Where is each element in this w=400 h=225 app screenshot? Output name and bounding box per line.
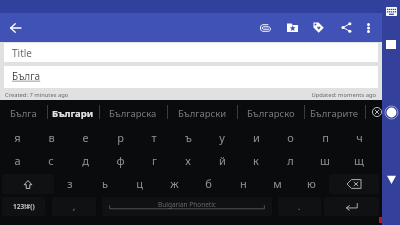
staticText: д — [82, 153, 89, 168]
staticText: м — [273, 176, 282, 191]
staticText: Български — [178, 107, 227, 120]
staticText: у — [219, 130, 225, 145]
staticText: т — [151, 130, 157, 145]
staticText: ш — [320, 153, 330, 168]
button[interactable]: и — [239, 126, 273, 149]
staticText: н — [240, 176, 247, 191]
staticText: е — [82, 130, 89, 145]
button[interactable]: Move to folder — [280, 15, 304, 40]
staticText: Bulgarian Phonetic — [158, 200, 216, 209]
staticText: в — [48, 130, 55, 145]
staticText: г — [152, 153, 157, 168]
staticText: р — [117, 130, 124, 145]
button[interactable]: Navigate up — [3, 13, 27, 42]
button[interactable]: с — [34, 149, 68, 172]
button[interactable]: Home — [382, 103, 400, 122]
staticText: ц — [136, 176, 143, 191]
button[interactable]: Бълга — [0, 100, 47, 127]
button[interactable]: ш — [308, 149, 342, 172]
button[interactable]: Българи — [47, 100, 99, 127]
button[interactable]: Българска — [99, 100, 167, 127]
button[interactable]: Българите — [304, 100, 365, 127]
button[interactable]: х — [171, 149, 205, 172]
button[interactable]: Share — [334, 15, 358, 40]
button[interactable]: п — [308, 126, 342, 149]
staticText: Бълга — [10, 107, 37, 120]
button[interactable]: у — [205, 126, 239, 149]
staticText: Updated: moments ago — [276, 91, 376, 99]
button[interactable]: л — [273, 149, 307, 172]
staticText: б — [205, 176, 212, 191]
button[interactable]: Space — [102, 197, 272, 216]
button[interactable]: ж — [157, 172, 191, 195]
button[interactable]: е — [68, 126, 102, 149]
staticText: , — [73, 201, 76, 212]
button[interactable]: Switch keyboard — [382, 3, 400, 19]
staticText: ю — [307, 176, 316, 191]
button[interactable]: Shift — [2, 174, 54, 194]
staticText: Title — [12, 46, 32, 60]
button[interactable]: Symbols — [2, 197, 45, 216]
button[interactable]: я — [0, 126, 34, 149]
button[interactable]: р — [103, 126, 137, 149]
staticText: п — [322, 130, 329, 145]
button[interactable]: к — [239, 149, 273, 172]
staticText: л — [287, 153, 294, 168]
button[interactable]: Labels — [306, 15, 330, 40]
staticText: 123!#() — [13, 202, 35, 211]
button[interactable]: н — [226, 172, 260, 195]
button[interactable]: в — [34, 126, 68, 149]
staticText: о — [287, 130, 294, 145]
staticText: з — [67, 176, 73, 191]
staticText: я — [14, 130, 21, 145]
staticText: х — [185, 153, 191, 168]
button[interactable]: Title — [4, 43, 378, 62]
button[interactable]: т — [137, 126, 171, 149]
staticText: и — [253, 130, 260, 145]
button[interactable]: о — [273, 126, 307, 149]
staticText: Българи — [52, 107, 94, 120]
button[interactable]: Comma — [52, 197, 96, 216]
button[interactable]: д — [68, 149, 102, 172]
staticText: Българско — [247, 107, 295, 120]
button[interactable]: Recent apps — [382, 35, 400, 54]
staticText: Българите — [310, 107, 359, 120]
button[interactable]: ц — [122, 172, 156, 195]
button[interactable]: Close suggestions — [367, 102, 386, 121]
staticText: ъ — [185, 130, 192, 145]
staticText: с — [48, 153, 54, 168]
staticText: Бълга — [12, 69, 41, 83]
button[interactable]: Enter — [324, 197, 379, 216]
button[interactable]: ю — [294, 172, 328, 195]
staticText: ч — [356, 130, 363, 145]
button[interactable]: ь — [88, 172, 122, 195]
staticText: щ — [354, 153, 364, 168]
staticText: ь — [102, 176, 108, 191]
button[interactable]: ч — [342, 126, 376, 149]
staticText: Българска — [109, 107, 157, 120]
staticText: а — [14, 153, 21, 168]
button[interactable]: ъ — [171, 126, 205, 149]
button[interactable]: More options — [356, 15, 380, 40]
button[interactable]: м — [260, 172, 294, 195]
staticText: й — [219, 153, 226, 168]
staticText: ж — [170, 176, 179, 191]
button[interactable]: щ — [342, 149, 376, 172]
button[interactable]: Delete — [329, 174, 379, 194]
staticText: . — [298, 201, 301, 212]
button[interactable]: Български — [167, 100, 237, 127]
button[interactable]: ф — [103, 149, 137, 172]
staticText: ф — [116, 153, 125, 168]
button[interactable]: Back — [382, 170, 400, 189]
staticText: Created: 7 minutes ago — [5, 91, 69, 99]
button[interactable]: а — [0, 149, 34, 172]
button[interactable]: Българско — [237, 100, 304, 127]
button[interactable]: Attach file — [253, 15, 277, 40]
staticText: к — [253, 153, 259, 168]
button[interactable]: Бълга — [4, 66, 378, 88]
button[interactable]: й — [205, 149, 239, 172]
button[interactable]: б — [191, 172, 225, 195]
button[interactable]: з — [53, 172, 87, 195]
button[interactable]: г — [137, 149, 171, 172]
